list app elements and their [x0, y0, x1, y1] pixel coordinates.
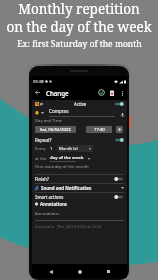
staticText: Every: [35, 146, 46, 152]
button[interactable]: More options: [117, 88, 127, 98]
button[interactable]: Smart actions: [35, 193, 124, 201]
button[interactable]: Sound and Notification: [35, 184, 124, 192]
staticText: 17:30: [94, 127, 105, 133]
button[interactable]: Delete: [107, 88, 117, 98]
staticText: Repeat?: [35, 137, 52, 143]
button[interactable]: Active: [35, 100, 124, 108]
staticText: 09:33: [33, 79, 44, 84]
button[interactable]: Toggle: [114, 137, 124, 143]
staticText: Finish?: [35, 176, 49, 182]
button[interactable]: Home: [75, 267, 84, 276]
staticText: Annotations: [35, 211, 59, 217]
staticText: Change: [46, 89, 69, 97]
button[interactable]: Toggle: [114, 176, 124, 182]
staticText: on the day of the week: [6, 18, 152, 36]
button[interactable]: Recents: [104, 267, 113, 276]
button[interactable]: Alarm: [116, 126, 123, 133]
staticText: Inserted in: [35, 224, 55, 229]
staticText: Ex: first Saturday of the month: [17, 38, 142, 50]
staticText: Annotations: [40, 201, 68, 207]
staticText: Month (s): [59, 146, 78, 152]
button[interactable]: Toggle: [114, 101, 124, 107]
button[interactable]: Month (s): [57, 145, 93, 152]
staticText: 1: [50, 146, 53, 152]
staticText: Active: [74, 101, 87, 107]
button[interactable]: Repeat?: [35, 136, 124, 143]
button[interactable]: Back: [46, 267, 55, 276]
button[interactable]: Back: [32, 87, 43, 98]
staticText: Sat, 06/04/2022: [40, 127, 71, 133]
button[interactable]: Save: [96, 87, 107, 98]
staticText: day of the week: [50, 155, 84, 161]
staticText: Day and Time: [35, 118, 62, 124]
staticText: at the: [35, 156, 47, 162]
button[interactable]: 17:30: [86, 126, 112, 133]
button[interactable]: Finish?: [35, 175, 124, 183]
staticText: Monthly repetition: [18, 0, 140, 18]
staticText: First saturday of the month: [35, 164, 89, 170]
button[interactable]: Sat, 06/04/2022: [35, 126, 76, 133]
staticText: Compras: [49, 108, 69, 114]
staticText: Thu, 04/14/2022 at 22:54: [57, 224, 102, 229]
staticText: Smart actions: [35, 194, 64, 200]
staticText: Sound and Notification: [41, 185, 92, 191]
button[interactable]: Toggle: [114, 194, 124, 200]
